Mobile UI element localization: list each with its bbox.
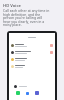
staticText: person you're calling will <box>3 15 43 20</box>
staticText: Call each other at any time in <box>3 8 50 13</box>
button[interactable] <box>9 49 55 56</box>
button[interactable] <box>9 56 55 63</box>
staticText: hear you clearly, even in a <box>3 19 45 24</box>
button[interactable] <box>9 42 55 49</box>
staticText: HD Voice <box>3 3 21 9</box>
staticText: noisy place. <box>3 22 22 27</box>
staticText: high definition, and the <box>3 12 41 17</box>
button[interactable] <box>9 63 55 70</box>
